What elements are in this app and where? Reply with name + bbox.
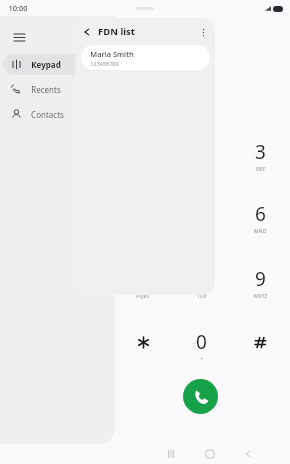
button[interactable]: 2 (175, 130, 227, 180)
button[interactable]: More options (194, 23, 212, 41)
button[interactable]: Recent apps (158, 444, 184, 464)
button[interactable]: 3 (234, 130, 286, 180)
staticText: 10:00 (8, 3, 28, 13)
button[interactable]: 6 (234, 192, 286, 242)
staticText: WXYZ (253, 293, 268, 299)
button[interactable]: Back (235, 444, 261, 464)
button[interactable] (117, 320, 169, 370)
button[interactable]: 7 (117, 257, 169, 307)
staticText: 9 (255, 266, 266, 292)
staticText: Recents (31, 84, 61, 95)
button[interactable]: Back (78, 23, 96, 41)
button[interactable]: Call (183, 379, 218, 414)
staticText: PQRS (136, 293, 150, 299)
button[interactable]: Maria Smith (81, 45, 210, 70)
button[interactable]: Menu (6, 24, 32, 50)
staticText: + (200, 356, 204, 362)
staticText: TUV (197, 293, 207, 299)
staticText: 123456789 (90, 60, 119, 67)
staticText: Maria Smith (90, 49, 134, 59)
button[interactable]: Recents (3, 79, 111, 100)
button[interactable]: 0 (175, 320, 227, 370)
button[interactable]: 9 (234, 257, 286, 307)
staticText: MNO (254, 228, 267, 234)
staticText: Keypad (31, 59, 61, 70)
button[interactable]: Contacts (3, 104, 111, 125)
button[interactable]: 8 (175, 257, 227, 307)
staticText: FDN list (98, 25, 135, 38)
button[interactable]: 5 (175, 192, 227, 242)
staticText: 0 (196, 329, 207, 355)
staticText: 3 (255, 139, 266, 165)
button[interactable]: Keypad (3, 54, 111, 75)
staticText: 6 (255, 201, 266, 227)
button[interactable] (234, 320, 286, 370)
staticText: Contacts (31, 109, 64, 120)
staticText: DEF (256, 166, 266, 172)
button[interactable]: Home (197, 444, 223, 464)
